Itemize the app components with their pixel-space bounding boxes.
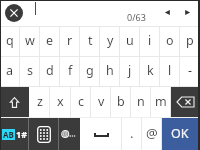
staticText: b bbox=[117, 93, 125, 110]
button[interactable]: b bbox=[111, 87, 131, 117]
button[interactable]: h bbox=[100, 57, 120, 86]
staticText: i bbox=[148, 32, 152, 49]
button[interactable]: a bbox=[0, 57, 20, 86]
staticText: e bbox=[46, 32, 54, 49]
button[interactable]: j bbox=[120, 57, 140, 86]
button[interactable]: w bbox=[20, 27, 40, 56]
button[interactable]: Shift bbox=[0, 87, 29, 117]
staticText: @ bbox=[146, 124, 158, 142]
button[interactable]: k bbox=[140, 57, 160, 86]
button[interactable]: c bbox=[71, 87, 91, 117]
staticText: t bbox=[88, 32, 93, 49]
button[interactable]: AB bbox=[0, 118, 29, 150]
button[interactable]: e bbox=[40, 27, 60, 56]
button[interactable]: v bbox=[91, 87, 111, 117]
button[interactable]: Symbols bbox=[29, 118, 59, 150]
button[interactable]: q bbox=[0, 27, 20, 56]
staticText: 1# bbox=[16, 128, 27, 140]
button[interactable]: Next bbox=[181, 6, 194, 19]
staticText: q bbox=[6, 32, 14, 49]
staticText: f bbox=[68, 62, 73, 79]
button[interactable]: u bbox=[120, 27, 140, 56]
button[interactable]: x bbox=[50, 87, 71, 117]
staticText: j bbox=[128, 62, 132, 79]
button[interactable]: Language bbox=[59, 118, 80, 150]
button[interactable]: Backspace bbox=[171, 87, 200, 117]
staticText: g bbox=[86, 62, 94, 79]
button[interactable]: l bbox=[160, 57, 180, 86]
button[interactable]: i bbox=[140, 27, 160, 56]
button[interactable]: y bbox=[100, 27, 120, 56]
staticText: w bbox=[25, 32, 35, 49]
button[interactable]: f bbox=[60, 57, 80, 86]
staticText: o bbox=[166, 32, 174, 49]
staticText: x bbox=[57, 93, 64, 110]
staticText: u bbox=[126, 32, 134, 49]
staticText: 0/63 bbox=[127, 11, 146, 23]
button[interactable]: OK bbox=[162, 118, 200, 150]
button[interactable]: - bbox=[180, 57, 200, 86]
staticText: . bbox=[130, 124, 134, 142]
staticText: AB bbox=[3, 129, 14, 140]
staticText: c bbox=[78, 93, 85, 110]
button[interactable]: r bbox=[60, 27, 80, 56]
button[interactable]: m bbox=[151, 87, 171, 117]
staticText: n bbox=[137, 93, 145, 110]
button[interactable]: Space bbox=[80, 118, 122, 150]
staticText: s bbox=[27, 62, 33, 79]
button[interactable]: n bbox=[131, 87, 151, 117]
staticText: l bbox=[168, 62, 172, 79]
staticText: m bbox=[155, 93, 167, 110]
staticText: v bbox=[98, 93, 105, 110]
button[interactable]: g bbox=[80, 57, 100, 86]
button[interactable]: s bbox=[20, 57, 40, 86]
staticText: OK bbox=[171, 125, 189, 142]
button[interactable]: z bbox=[29, 87, 50, 117]
button[interactable]: p bbox=[180, 27, 200, 56]
button[interactable]: d bbox=[40, 57, 60, 86]
staticText: h bbox=[106, 62, 114, 79]
staticText: r bbox=[67, 32, 73, 49]
staticText: k bbox=[147, 62, 154, 79]
staticText: - bbox=[188, 62, 193, 79]
staticText: d bbox=[46, 62, 54, 79]
button[interactable]: . bbox=[122, 118, 142, 150]
button[interactable]: Clear bbox=[5, 4, 23, 22]
staticText: y bbox=[107, 32, 114, 49]
button[interactable]: Previous bbox=[161, 6, 174, 19]
button[interactable]: @ bbox=[142, 118, 162, 150]
button[interactable]: o bbox=[160, 27, 180, 56]
staticText: z bbox=[37, 93, 43, 110]
staticText: p bbox=[186, 32, 194, 49]
staticText: a bbox=[6, 62, 14, 79]
button[interactable]: t bbox=[80, 27, 100, 56]
